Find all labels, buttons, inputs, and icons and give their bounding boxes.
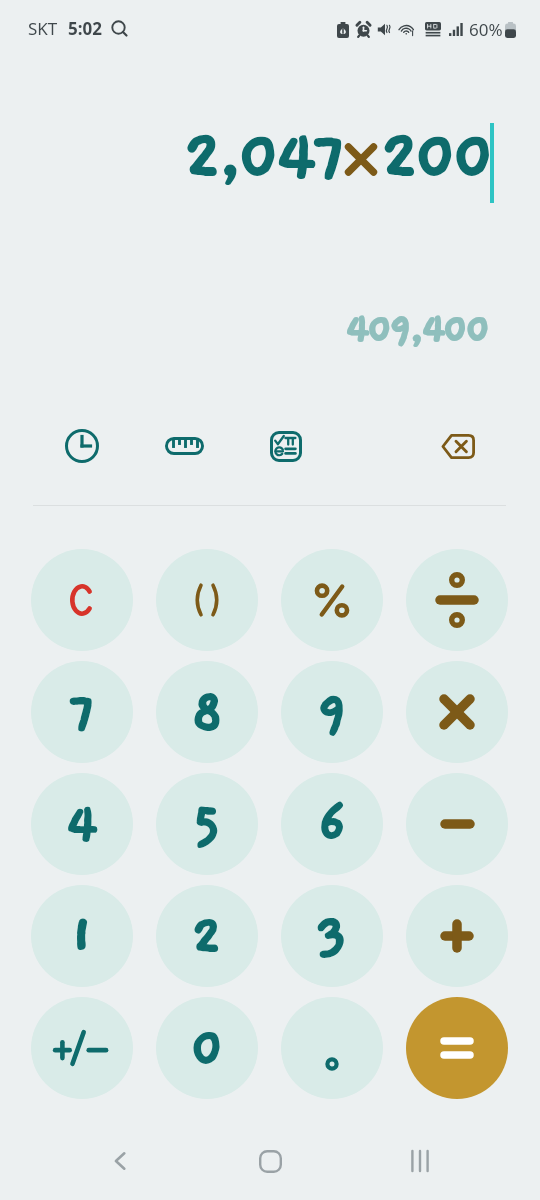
button[interactable]: Minus <box>406 773 508 875</box>
button[interactable]: Plus <box>406 885 508 987</box>
staticText: 9 <box>317 682 348 742</box>
staticText: 1 <box>69 906 95 966</box>
button[interactable]: Plus minus <box>31 997 133 1099</box>
staticText: 9 <box>317 682 348 742</box>
staticText: 3 <box>316 906 348 966</box>
staticText: 409,400 <box>345 307 488 352</box>
button[interactable]: 4 <box>31 773 133 875</box>
staticText: 2,047 <box>183 118 342 194</box>
staticText: 5:02 <box>68 17 102 40</box>
button[interactable]: Divide <box>406 549 508 651</box>
button[interactable]: Percent <box>281 549 383 651</box>
staticText: 8 <box>191 682 224 742</box>
button[interactable]: History <box>54 418 110 474</box>
staticText: SKT <box>28 17 58 40</box>
staticText: 7 <box>68 682 97 742</box>
staticText: 3 <box>316 906 348 966</box>
button[interactable]: Unit converter <box>156 418 212 474</box>
button[interactable]: Parentheses <box>156 549 258 651</box>
staticText: 1 <box>69 906 95 966</box>
button[interactable]: 3 <box>281 885 383 987</box>
staticText: 8 <box>191 682 224 742</box>
button[interactable]: 0 <box>156 997 258 1099</box>
staticText: 7 <box>68 682 97 742</box>
staticText: 200 <box>380 118 490 194</box>
staticText: 2 <box>191 906 223 966</box>
button[interactable]: Backspace <box>430 418 486 474</box>
staticText: 200 <box>380 118 490 194</box>
staticText: 0 <box>190 1018 225 1078</box>
staticText: 5 <box>192 794 222 854</box>
staticText: 4 <box>65 794 99 854</box>
staticText: 5 <box>192 794 222 854</box>
button[interactable]: 9 <box>281 661 383 763</box>
staticText: 6 <box>318 794 347 854</box>
button[interactable]: 7 <box>31 661 133 763</box>
staticText: 0 <box>190 1018 225 1078</box>
staticText: 6 <box>318 794 347 854</box>
button[interactable]: Scientific calculator <box>258 418 314 474</box>
button[interactable]: 5 <box>156 773 258 875</box>
staticText: 60% <box>469 18 503 41</box>
button[interactable]: Back <box>90 1131 150 1191</box>
button[interactable]: Recent apps <box>390 1131 450 1191</box>
button[interactable]: Equals <box>406 997 508 1099</box>
button[interactable]: 6 <box>281 773 383 875</box>
staticText: 4 <box>65 794 99 854</box>
button[interactable]: Home <box>240 1131 300 1191</box>
button[interactable]: 8 <box>156 661 258 763</box>
button[interactable]: 1 <box>31 885 133 987</box>
button[interactable]: 409,400 <box>345 307 488 352</box>
button[interactable]: Clear <box>31 549 133 651</box>
button[interactable]: Multiply <box>406 661 508 763</box>
staticText: 409,400 <box>345 307 488 352</box>
staticText: 2,047 <box>183 118 342 194</box>
button[interactable]: 2 <box>156 885 258 987</box>
button[interactable]: Decimal point <box>281 997 383 1099</box>
staticText: 2 <box>191 906 223 966</box>
